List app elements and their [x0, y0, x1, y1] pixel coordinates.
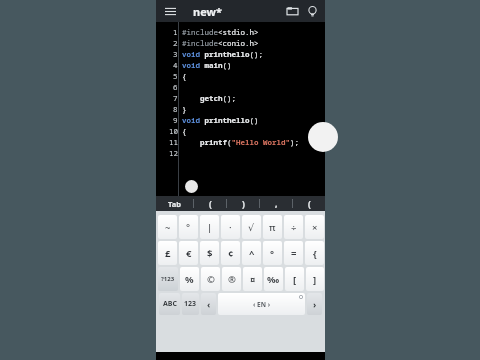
staticText: 6 [173, 82, 178, 92]
staticText: ~ [165, 221, 171, 234]
button[interactable]: Tab [156, 196, 193, 211]
button[interactable]: = [284, 241, 303, 265]
button[interactable]: , [260, 196, 292, 211]
staticText: | [207, 221, 213, 234]
staticText: void printhello() [182, 115, 259, 125]
staticText: π [269, 221, 276, 234]
staticText: getch(); [182, 93, 236, 103]
staticText: ( [308, 198, 311, 210]
staticText: × [312, 221, 318, 234]
button[interactable]: { [305, 241, 324, 265]
button[interactable]: ?123 [158, 267, 178, 291]
staticText: #include<stdio.h> [182, 27, 259, 37]
staticText: , [275, 198, 278, 210]
staticText: ‹ EN › [253, 300, 271, 309]
button[interactable]: ‹ [201, 293, 216, 315]
staticText: 2 [173, 38, 178, 48]
staticText: ¤ [250, 273, 256, 286]
staticText: 12 [169, 148, 178, 158]
staticText: © [207, 273, 215, 286]
staticText: 9 [173, 115, 178, 125]
staticText: ?123 [161, 275, 175, 283]
button[interactable]: © [201, 267, 220, 291]
staticText: ] [313, 273, 317, 286]
button[interactable]: Hints [303, 0, 322, 22]
button[interactable]: € [179, 241, 198, 265]
button[interactable]: ° [179, 215, 198, 239]
staticText: $ [207, 247, 213, 260]
button[interactable]: × [305, 215, 324, 239]
button[interactable]: › [307, 293, 322, 315]
staticText: } [182, 104, 187, 114]
button[interactable]: Open folder [281, 0, 303, 22]
staticText: 3 [173, 49, 178, 59]
button[interactable]: 123 [182, 293, 199, 315]
button[interactable]: ( [293, 196, 325, 211]
staticText: ) [242, 198, 245, 210]
staticText: ¢ [228, 247, 234, 260]
button[interactable]: ( [194, 196, 226, 211]
button[interactable]: ) [227, 196, 259, 211]
staticText: 123 [184, 299, 197, 309]
staticText: 5 [173, 71, 178, 81]
button[interactable]: $ [200, 241, 219, 265]
staticText: 1 [173, 27, 178, 37]
button[interactable]: ABC [159, 293, 180, 315]
staticText: = [291, 247, 297, 260]
staticText: · [229, 221, 232, 234]
staticText: printf("Hello World"); [182, 137, 299, 147]
button[interactable]: | [200, 215, 219, 239]
staticText: { [313, 247, 317, 260]
staticText: void main() [182, 60, 232, 70]
staticText: ÷ [291, 221, 297, 234]
button[interactable]: ¤ [243, 267, 262, 291]
button[interactable]: ¢ [221, 241, 240, 265]
staticText: € [186, 247, 192, 260]
button[interactable]: · [221, 215, 240, 239]
button[interactable]: ÷ [284, 215, 303, 239]
staticText: ° [270, 247, 275, 260]
staticText: 7 [173, 93, 178, 103]
staticText: ( [209, 198, 212, 210]
button[interactable]: ® [222, 267, 241, 291]
staticText: 8 [173, 104, 178, 114]
staticText: Tab [168, 199, 181, 209]
staticText: { [182, 126, 187, 136]
button[interactable]: Space [218, 293, 305, 315]
button[interactable]: ‰ [264, 267, 283, 291]
staticText: ‰ [267, 273, 280, 286]
staticText: new* [193, 4, 222, 19]
button[interactable]: Menu [161, 2, 179, 20]
button[interactable]: ~ [158, 215, 177, 239]
button[interactable]: Run [308, 122, 338, 152]
staticText: › [313, 298, 317, 310]
staticText: [ [293, 273, 297, 286]
staticText: 4 [173, 60, 178, 70]
staticText: ‹ [207, 298, 211, 310]
staticText: √ [248, 222, 255, 233]
staticText: 10 [169, 126, 178, 136]
staticText: £ [165, 247, 171, 260]
staticText: % [185, 273, 194, 286]
button[interactable]: ] [306, 267, 324, 291]
button[interactable]: £ [158, 241, 177, 265]
staticText: #include<conio.h> [182, 38, 259, 48]
staticText: 11 [169, 137, 178, 147]
staticText: ^ [249, 247, 255, 260]
staticText: { [182, 71, 187, 81]
button[interactable]: √ [242, 215, 261, 239]
button[interactable]: ° [263, 241, 282, 265]
staticText: void printhello(); [182, 49, 263, 59]
button[interactable]: ^ [242, 241, 261, 265]
button[interactable]: π [263, 215, 282, 239]
button[interactable]: % [180, 267, 199, 291]
staticText: ABC [163, 299, 177, 309]
button[interactable]: [ [285, 267, 304, 291]
staticText: ® [228, 273, 236, 286]
staticText: ° [186, 221, 191, 234]
